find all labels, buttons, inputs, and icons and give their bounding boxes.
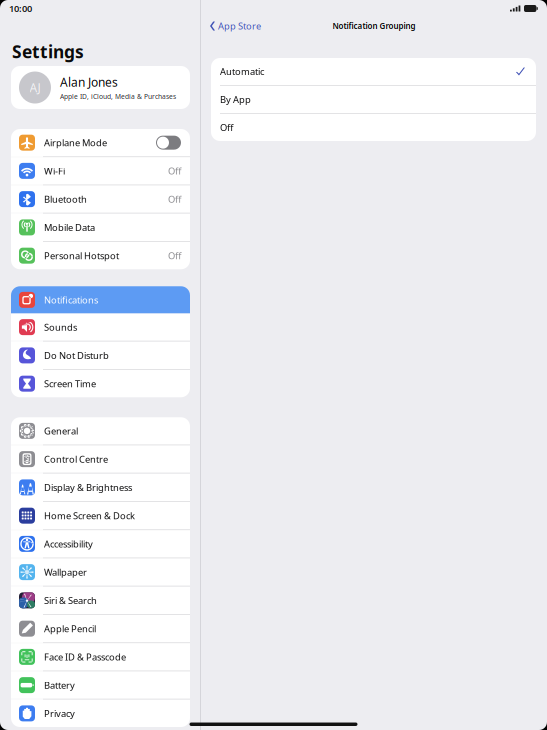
- staticText: By App: [220, 93, 251, 106]
- staticText: Apple Pencil: [44, 622, 96, 635]
- button[interactable]: Apple Pencil: [11, 615, 190, 642]
- staticText: AJ: [29, 79, 40, 95]
- button[interactable]: Automatic: [211, 58, 536, 85]
- staticText: Settings: [12, 40, 84, 63]
- staticText: Privacy: [44, 707, 75, 720]
- staticText: Alan Jones: [60, 74, 118, 90]
- button[interactable]: Notifications: [11, 286, 190, 313]
- button[interactable]: Bluetooth: [11, 185, 190, 213]
- button[interactable]: Mobile Data: [11, 214, 190, 241]
- staticText: Airplane Mode: [44, 136, 107, 149]
- staticText: Bluetooth: [44, 193, 87, 205]
- staticText: App Store: [218, 20, 261, 32]
- staticText: Wi-Fi: [44, 165, 65, 177]
- button[interactable]: Sounds: [11, 313, 190, 341]
- button[interactable]: Privacy: [11, 700, 190, 727]
- button[interactable]: Siri & Search: [11, 587, 190, 614]
- staticText: Siri & Search: [44, 594, 97, 607]
- button[interactable]: Off: [211, 114, 536, 141]
- staticText: Off: [168, 249, 181, 262]
- button[interactable]: Wi-Fi: [11, 157, 190, 184]
- staticText: General: [44, 425, 78, 437]
- staticText: Off: [168, 165, 181, 177]
- staticText: Off: [168, 193, 181, 205]
- button[interactable]: General: [11, 417, 190, 444]
- button[interactable]: Battery: [11, 671, 190, 699]
- button[interactable]: By App: [211, 86, 536, 113]
- staticText: Mobile Data: [44, 221, 95, 234]
- staticText: Apple ID, iCloud, Media & Purchases: [60, 92, 176, 101]
- staticText: Control Centre: [44, 453, 108, 465]
- staticText: Screen Time: [44, 377, 96, 390]
- button[interactable]: Screen Time: [11, 370, 190, 397]
- button[interactable]: Display & Brightness: [11, 474, 190, 501]
- button[interactable]: Do Not Disturb: [11, 342, 190, 369]
- button[interactable]: App Store: [201, 15, 265, 37]
- staticText: Personal Hotspot: [44, 249, 119, 262]
- staticText: Accessibility: [44, 538, 93, 550]
- staticText: Notification Grouping: [332, 21, 415, 31]
- button[interactable]: Face ID & Passcode: [11, 643, 190, 670]
- staticText: Sounds: [44, 321, 77, 333]
- staticText: Automatic: [220, 65, 264, 78]
- button[interactable]: Home Screen & Dock: [11, 502, 190, 529]
- button[interactable]: Control Centre: [11, 445, 190, 473]
- button[interactable]: Airplane Mode: [11, 129, 190, 156]
- staticText: 10:00: [9, 2, 32, 15]
- button[interactable]: Personal Hotspot: [11, 242, 190, 269]
- staticText: Off: [220, 121, 233, 134]
- button[interactable]: AJ: [11, 66, 190, 109]
- staticText: Battery: [44, 679, 75, 691]
- staticText: Face ID & Passcode: [44, 651, 126, 663]
- staticText: Do Not Disturb: [44, 349, 109, 362]
- staticText: Wallpaper: [44, 566, 87, 578]
- staticText: Display & Brightness: [44, 481, 132, 494]
- button[interactable]: Wallpaper: [11, 558, 190, 586]
- staticText: Home Screen & Dock: [44, 509, 135, 522]
- staticText: Notifications: [44, 294, 98, 306]
- button[interactable]: Accessibility: [11, 530, 190, 557]
